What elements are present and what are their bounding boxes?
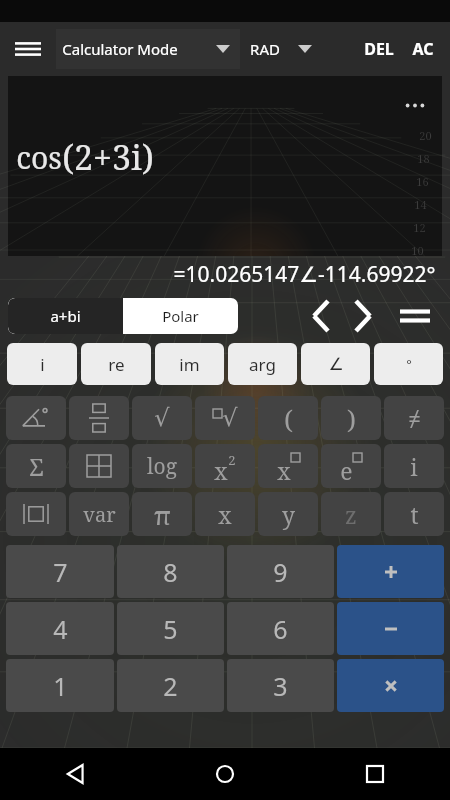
button[interactable]: Recents xyxy=(300,748,450,800)
staticText: im xyxy=(179,353,200,376)
button[interactable]: ∠ xyxy=(301,343,370,385)
staticText: 2 xyxy=(228,451,236,469)
button[interactable]: π xyxy=(132,492,192,536)
button[interactable]: z xyxy=(321,492,381,536)
button[interactable]: |□| xyxy=(6,492,66,536)
button[interactable]: ∡° xyxy=(6,396,66,440)
button[interactable]: Previous xyxy=(300,294,342,338)
staticText: 9 xyxy=(273,555,288,589)
staticText: a+bi xyxy=(50,306,81,326)
button[interactable]: More options xyxy=(402,96,428,114)
button[interactable]: 7 xyxy=(6,545,114,598)
button[interactable]: 6 xyxy=(227,602,334,655)
button[interactable]: x xyxy=(195,492,255,536)
staticText: RAD xyxy=(250,39,280,59)
staticText: 2 xyxy=(163,669,178,703)
button[interactable]: ⁿ√ xyxy=(195,396,255,440)
staticText: 5 xyxy=(163,612,178,646)
staticText: 7 xyxy=(53,555,68,589)
button[interactable]: Menu xyxy=(0,22,56,76)
staticText: Polar xyxy=(162,306,199,326)
button[interactable]: √ xyxy=(132,396,192,440)
staticText: ∠ xyxy=(328,354,344,374)
button[interactable]: t xyxy=(384,492,444,536)
button[interactable]: 3 xyxy=(227,659,334,712)
button[interactable]: Back xyxy=(0,748,150,800)
button[interactable]: 9 xyxy=(227,545,334,598)
button[interactable]: More options xyxy=(8,76,442,256)
button[interactable]: 5 xyxy=(117,602,224,655)
button[interactable]: Σ xyxy=(6,444,66,488)
staticText: =10.0265147∠-114.69922° xyxy=(173,260,436,289)
button[interactable] xyxy=(337,545,444,598)
button[interactable]: x² xyxy=(195,444,255,488)
staticText: Σ xyxy=(29,450,44,483)
staticText: z xyxy=(345,499,357,530)
staticText: ( xyxy=(284,401,293,436)
button[interactable]: Equals xyxy=(392,294,438,338)
button[interactable]: Calculator Mode xyxy=(56,29,240,69)
staticText: t xyxy=(410,499,419,530)
button[interactable]: 1 xyxy=(6,659,114,712)
staticText: x xyxy=(214,455,228,486)
button[interactable]: Polar xyxy=(123,298,238,334)
staticText: i xyxy=(410,451,418,482)
staticText: ) xyxy=(347,401,356,436)
button[interactable]: x□ xyxy=(258,444,318,488)
button[interactable]: im xyxy=(155,343,224,385)
staticText: 18 xyxy=(417,151,430,166)
staticText: e xyxy=(340,455,353,486)
staticText: π xyxy=(154,497,171,532)
staticText: x xyxy=(277,455,291,486)
button[interactable]: AC xyxy=(402,27,444,71)
button[interactable]: var xyxy=(69,492,129,536)
staticText: re xyxy=(108,353,125,376)
button[interactable]: ≠ xyxy=(384,396,444,440)
staticText: ≠ xyxy=(408,403,421,433)
button[interactable]: a+bi xyxy=(8,298,123,334)
button[interactable]: DEL xyxy=(356,27,402,71)
button[interactable]: i xyxy=(7,343,77,385)
staticText: ° xyxy=(406,355,412,373)
button[interactable]: ) xyxy=(321,396,381,440)
staticText: 16 xyxy=(416,174,429,189)
staticText: √ xyxy=(222,404,238,432)
button[interactable]: frac xyxy=(69,396,129,440)
staticText: 12 xyxy=(413,220,426,235)
staticText: (2+3i) xyxy=(62,134,154,180)
button[interactable]: Next xyxy=(342,294,384,338)
staticText: 1 xyxy=(53,669,68,703)
button[interactable]: log xyxy=(132,444,192,488)
staticText: AC xyxy=(412,38,434,60)
staticText: y xyxy=(282,499,295,530)
staticText: 10 xyxy=(411,243,424,256)
staticText: 20 xyxy=(419,128,432,143)
staticText: 14 xyxy=(414,197,427,212)
staticText: log xyxy=(147,452,177,481)
button[interactable]: RAD xyxy=(250,29,312,69)
staticText: Calculator Mode xyxy=(62,39,178,59)
button[interactable]: i xyxy=(384,444,444,488)
button[interactable]: re xyxy=(81,343,151,385)
button[interactable]: 8 xyxy=(117,545,224,598)
button[interactable]: Home xyxy=(150,748,300,800)
button[interactable]: arg xyxy=(228,343,297,385)
button[interactable] xyxy=(337,659,444,712)
button[interactable]: y xyxy=(258,492,318,536)
staticText: 8 xyxy=(163,555,178,589)
staticText: i xyxy=(40,353,45,376)
button[interactable]: 2 xyxy=(117,659,224,712)
staticText: cos xyxy=(16,137,62,178)
button[interactable]: mat xyxy=(69,444,129,488)
button[interactable]: 4 xyxy=(6,602,114,655)
button[interactable]: ( xyxy=(258,396,318,440)
staticText: √ xyxy=(154,404,170,432)
staticText: var xyxy=(83,501,116,528)
staticText: DEL xyxy=(364,38,394,60)
staticText: x xyxy=(218,499,232,530)
staticText: arg xyxy=(249,353,276,376)
button[interactable]: e□ xyxy=(321,444,381,488)
button[interactable] xyxy=(337,602,444,655)
button[interactable]: ° xyxy=(374,343,443,385)
staticText: 4 xyxy=(53,612,68,646)
